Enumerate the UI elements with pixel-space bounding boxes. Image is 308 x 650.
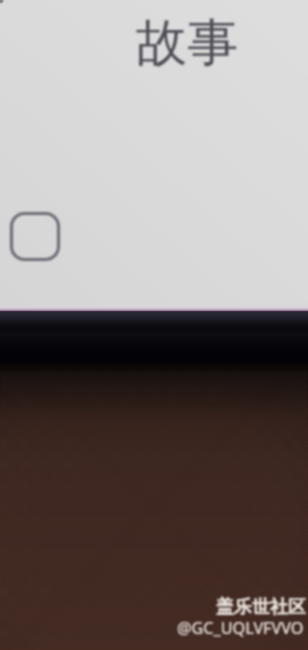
staticText: 盖乐世社区 xyxy=(216,596,306,619)
staticText: 故事 xyxy=(136,11,238,75)
staticText: @GC_UQLVFVVO xyxy=(177,617,304,639)
button[interactable]: Recent apps xyxy=(8,210,62,263)
